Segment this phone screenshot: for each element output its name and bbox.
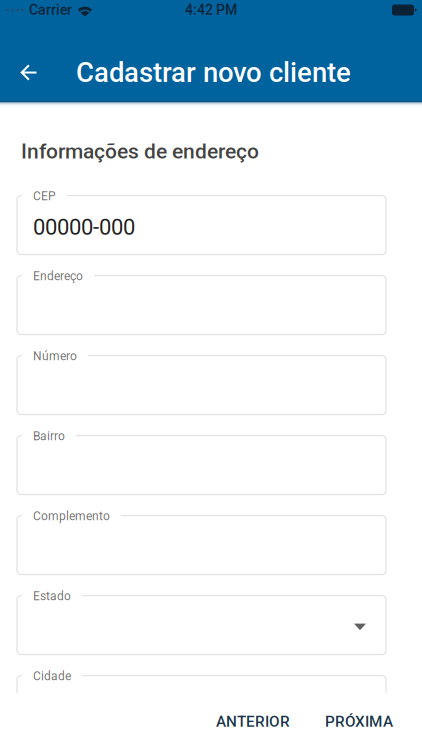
staticText: Complemento bbox=[33, 509, 110, 523]
staticText: CEP bbox=[33, 189, 56, 203]
button[interactable]: Back bbox=[0, 44, 58, 101]
staticText: Cadastrar novo cliente bbox=[76, 56, 351, 89]
staticText: Informações de endereço bbox=[21, 139, 259, 164]
button[interactable]: ANTERIOR bbox=[206, 700, 300, 742]
button[interactable]: PRÓXIMA bbox=[315, 700, 403, 742]
staticText: ANTERIOR bbox=[216, 712, 290, 730]
staticText: 4:42 PM bbox=[185, 2, 237, 18]
staticText: PRÓXIMA bbox=[325, 712, 393, 730]
staticText: Estado bbox=[33, 589, 71, 603]
staticText: Carrier bbox=[29, 2, 72, 18]
staticText: Cidade bbox=[33, 669, 71, 683]
staticText: Endereço bbox=[33, 269, 83, 283]
staticText: Número bbox=[33, 349, 77, 363]
staticText: Bairro bbox=[33, 429, 65, 443]
staticText: 00000-000 bbox=[33, 214, 135, 240]
